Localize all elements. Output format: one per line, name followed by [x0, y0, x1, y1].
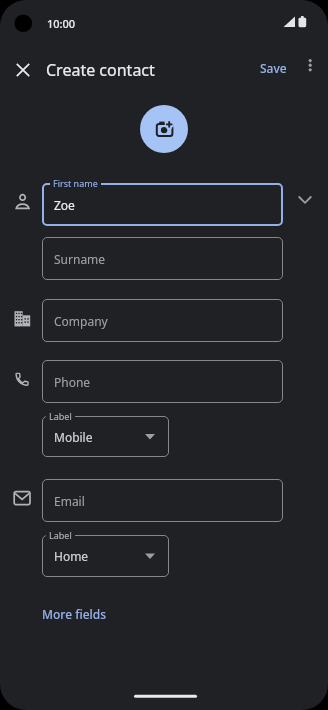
- button[interactable]: Company: [42, 299, 283, 342]
- staticText: Zoe: [54, 197, 75, 213]
- button[interactable]: [300, 54, 320, 82]
- staticText: More fields: [42, 606, 107, 622]
- button[interactable]: Save: [250, 54, 296, 82]
- staticText: Email: [54, 493, 85, 509]
- staticText: First name: [53, 177, 98, 189]
- button[interactable]: Zoe: [42, 183, 283, 226]
- button[interactable]: [140, 105, 188, 153]
- staticText: 10:00: [47, 16, 76, 31]
- staticText: Label: [49, 529, 72, 541]
- button[interactable]: Surname: [42, 237, 283, 280]
- staticText: Company: [54, 313, 108, 329]
- staticText: Label: [49, 410, 72, 422]
- staticText: Create contact: [46, 59, 155, 81]
- button[interactable]: [12, 59, 34, 81]
- staticText: Phone: [54, 374, 91, 390]
- button[interactable]: Mobile: [42, 416, 169, 457]
- staticText: Surname: [54, 251, 106, 267]
- staticText: Save: [260, 60, 287, 76]
- button[interactable]: Phone: [42, 360, 283, 403]
- button[interactable]: More fields: [36, 602, 112, 626]
- staticText: Mobile: [54, 429, 93, 445]
- staticText: Home: [54, 548, 89, 564]
- button[interactable]: Home: [42, 535, 169, 577]
- button[interactable]: Email: [42, 479, 283, 522]
